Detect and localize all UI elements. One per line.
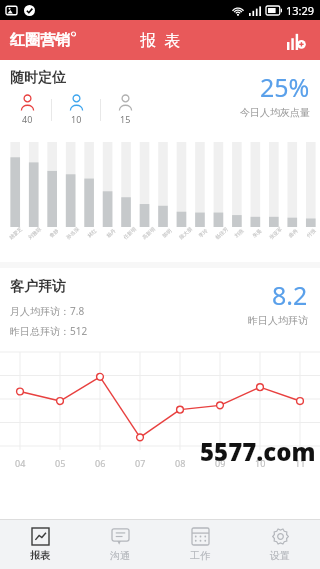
staticText: 40 <box>22 113 33 125</box>
staticText: 报表 <box>30 549 50 562</box>
staticText: 8.2 <box>272 278 308 312</box>
button[interactable]: 报表 <box>0 520 80 569</box>
staticText: 月人均拜访：7.8 <box>10 304 85 318</box>
staticText: 昨日人均拜访 <box>248 314 308 327</box>
staticText: 李玲 <box>197 227 209 239</box>
staticText: 昨日总拜访：512 <box>10 324 88 338</box>
staticText: 设置 <box>270 549 290 562</box>
staticText: 付强 <box>305 227 317 239</box>
staticText: 杨丹 <box>105 227 117 239</box>
button[interactable]: 15 <box>108 94 142 125</box>
staticText: 林红 <box>86 227 98 239</box>
staticText: 10 <box>71 113 82 125</box>
staticText: 杨佳芳 <box>214 226 229 240</box>
staticText: 06 <box>95 457 106 469</box>
staticText: 陈大朋 <box>178 226 193 240</box>
staticText: 陈明 <box>161 227 173 239</box>
staticText: 10 <box>255 457 266 469</box>
button[interactable]: 设置 <box>240 520 320 569</box>
staticText: 沟通 <box>110 549 130 562</box>
button[interactable]: 工作 <box>160 520 240 569</box>
staticText: 05 <box>55 457 66 469</box>
button[interactable]: Add report <box>280 24 312 56</box>
staticText: 11 <box>295 457 306 469</box>
button[interactable]: 40 <box>10 94 44 125</box>
button[interactable]: 10 <box>59 94 93 125</box>
staticText: 高新明 <box>141 226 156 240</box>
staticText: 朱曼 <box>251 227 263 239</box>
staticText: 姚爱芝 <box>8 226 23 240</box>
staticText: 任新明 <box>122 226 137 240</box>
staticText: 25% <box>260 70 310 104</box>
staticText: 随时定位 <box>10 69 66 87</box>
staticText: 04 <box>15 457 26 469</box>
button[interactable]: 沟通 <box>80 520 160 569</box>
staticText: 刘燕 <box>233 227 245 239</box>
staticText: 孙当深 <box>65 226 80 240</box>
staticText: 张亚军 <box>268 226 283 240</box>
staticText: 报 表 <box>140 29 181 51</box>
staticText: 刘雅琼 <box>27 226 42 240</box>
staticText: 红圈营销 <box>10 31 70 50</box>
staticText: 13:29 <box>286 3 315 18</box>
staticText: 今日人均灰点量 <box>240 106 310 119</box>
staticText: 鲁静 <box>48 227 60 239</box>
staticText: 08 <box>175 457 186 469</box>
staticText: 5577.com <box>200 435 316 468</box>
staticText: 曲冉 <box>287 227 299 239</box>
staticText: 客户拜访 <box>10 278 66 296</box>
staticText: 工作 <box>190 549 210 562</box>
staticText: 09 <box>215 457 226 469</box>
staticText: 07 <box>135 457 146 469</box>
staticText: 15 <box>120 113 131 125</box>
